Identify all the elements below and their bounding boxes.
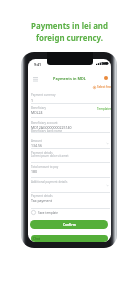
staticText: Tax payment [31, 198, 52, 203]
button[interactable]: Confirm [30, 220, 108, 229]
button[interactable]: Chat [31, 235, 108, 242]
staticText: 180 [31, 169, 38, 174]
staticText: Beneficiary bank name [31, 129, 63, 133]
staticText: Select from templates [97, 85, 111, 89]
staticText: Amount [31, 139, 42, 143]
staticText: Beneficiary account [31, 121, 58, 125]
staticText: Confirm [63, 223, 76, 227]
button[interactable]: Select from templates [93, 85, 111, 89]
staticText: MDL24 [31, 110, 43, 115]
staticText: 9:41 [34, 62, 42, 67]
staticText: Payment currency [31, 93, 56, 97]
staticText: Payments in lei and foreign currency. [0, 21, 139, 43]
staticText: 134.56 [31, 143, 42, 148]
staticText: Total amount to pay [31, 165, 59, 169]
staticText: Beneficiary [31, 106, 47, 110]
button[interactable]: Menu [30, 73, 41, 84]
staticText: Payments in MDL [28, 76, 111, 81]
button[interactable]: Templates [97, 107, 111, 111]
staticText: Additional payment details [31, 180, 68, 184]
button[interactable]: Save template [31, 210, 58, 215]
staticText: Payment details [31, 151, 53, 155]
staticText: Lorem ipsum dolor sit amet [31, 154, 69, 158]
staticText: 1 [31, 98, 34, 103]
staticText: Chat [33, 237, 40, 241]
staticText: Payment details [31, 194, 53, 198]
staticText: Save template [38, 211, 58, 215]
button[interactable]: Profile [101, 73, 111, 83]
staticText: MD12AG0000000225140 [31, 125, 72, 130]
